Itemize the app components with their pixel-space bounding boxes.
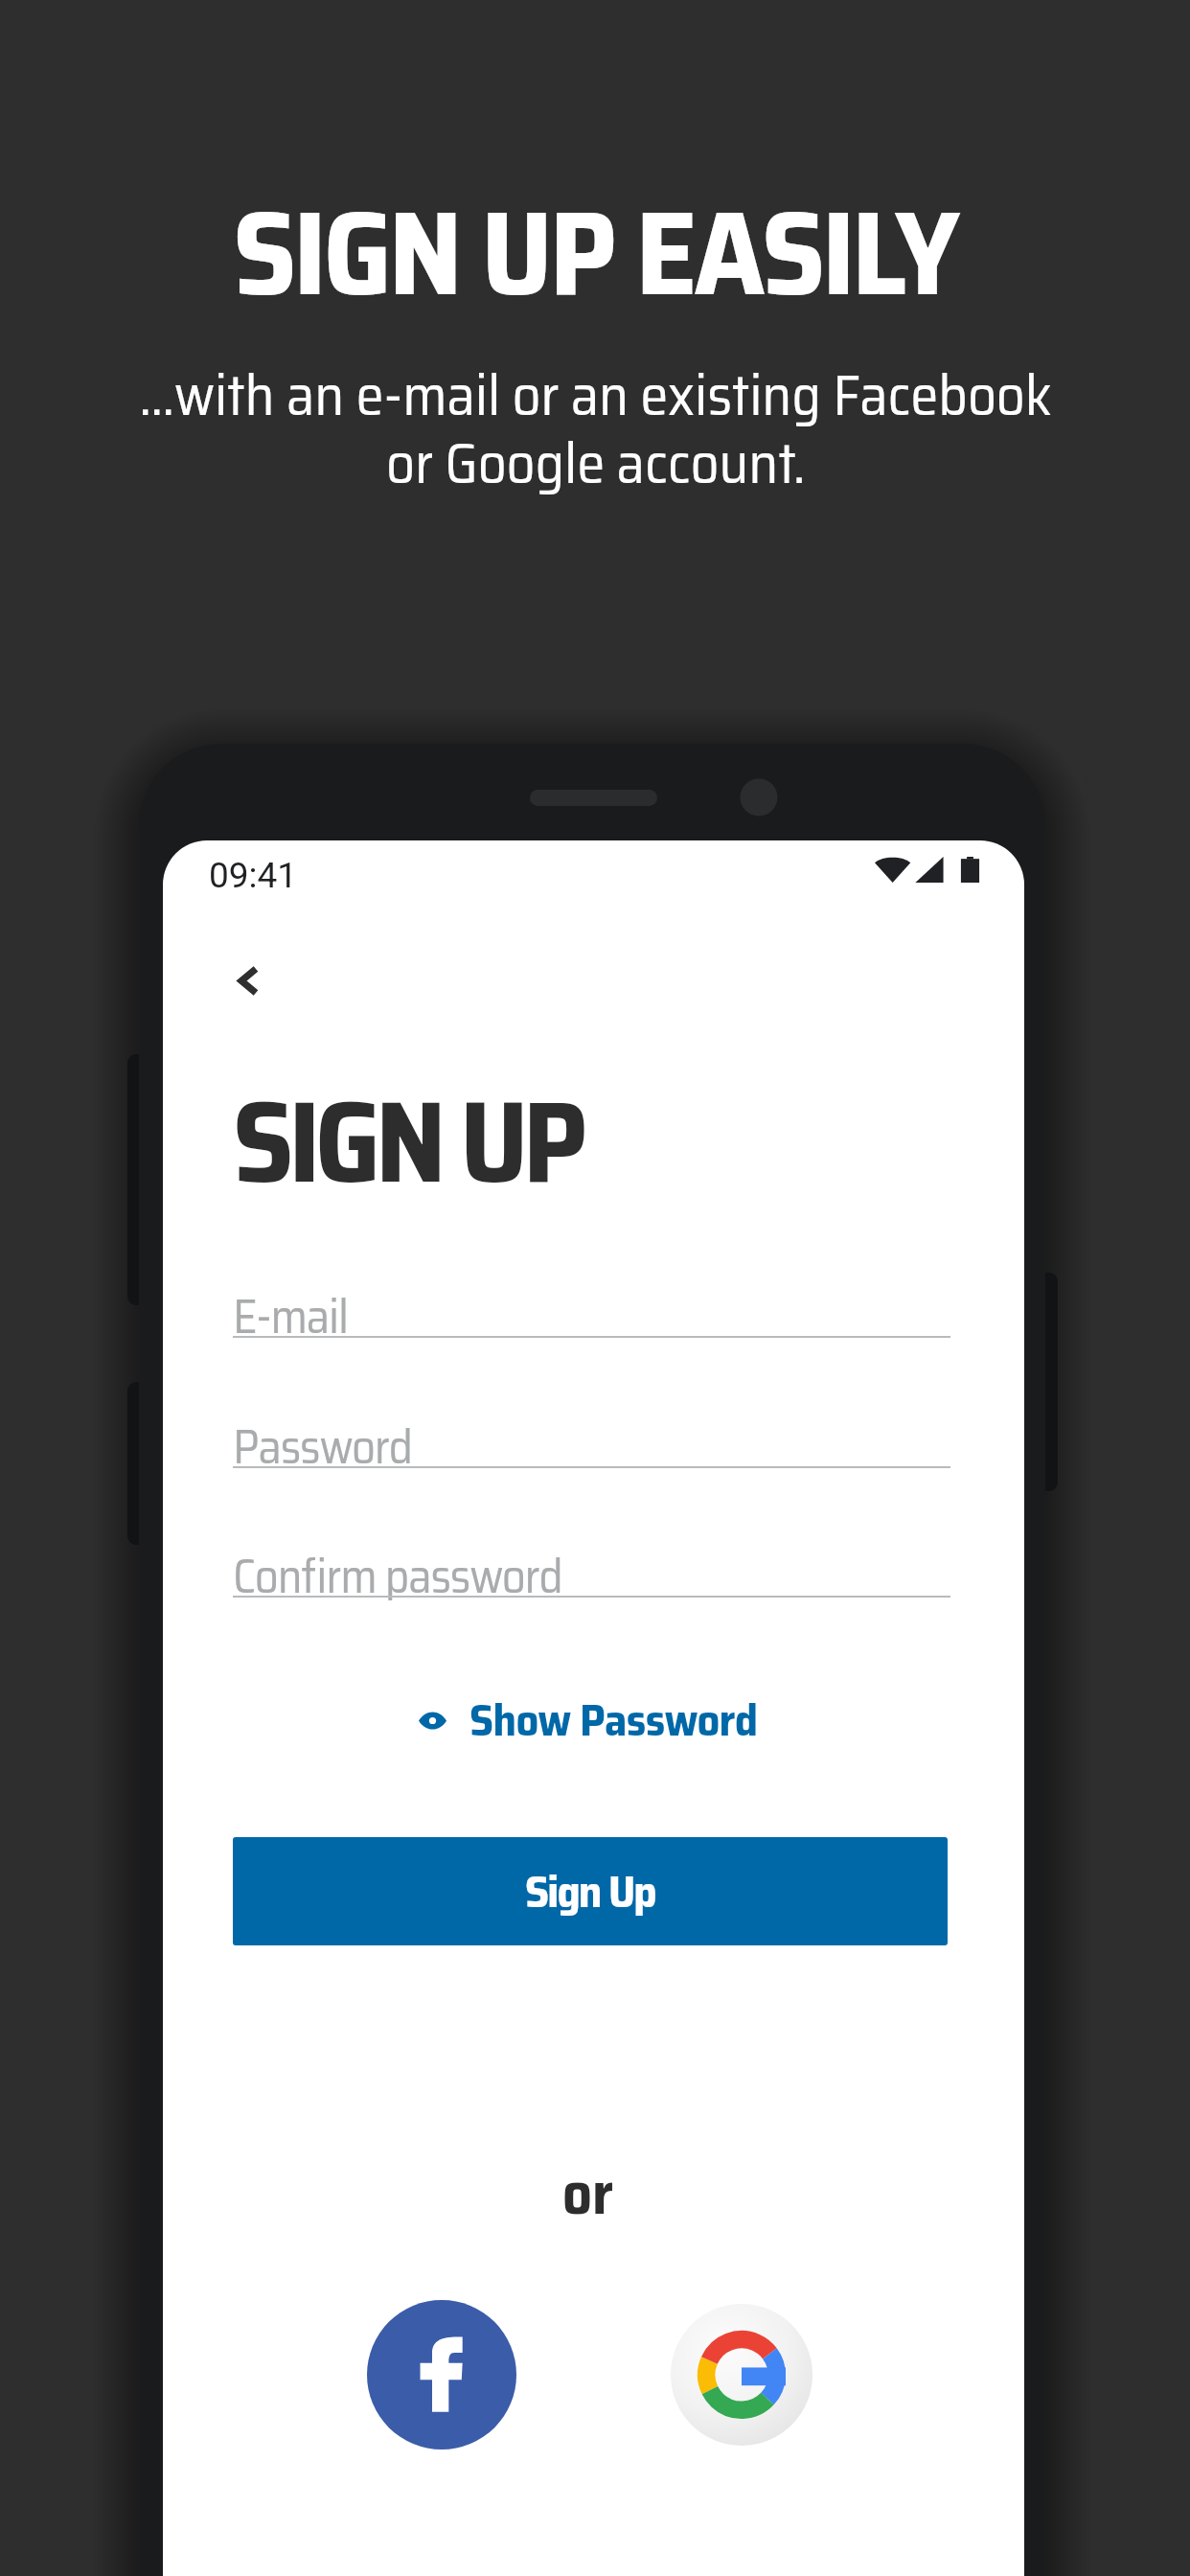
staticText: SIGN UP (233, 1052, 583, 1231)
staticText: 09:41 (209, 855, 298, 896)
button[interactable]: Confirm password (233, 1536, 950, 1598)
staticText: Show Password (469, 1685, 758, 1756)
button[interactable]: Password (233, 1407, 950, 1468)
staticText: ...with an e-mail or an existing Faceboo… (139, 351, 1052, 508)
staticText: or (163, 2148, 1018, 2240)
button[interactable]: E-mail (233, 1276, 950, 1338)
button[interactable]: Back (208, 940, 288, 1021)
button[interactable]: Sign up with Google (671, 2304, 812, 2446)
button[interactable]: Sign Up (233, 1837, 948, 1945)
button[interactable]: Sign up with Facebook (367, 2300, 516, 2449)
button[interactable]: Show Password (163, 1677, 1018, 1763)
staticText: Confirm password (233, 1539, 562, 1600)
staticText: Password (233, 1410, 412, 1471)
staticText: SIGN UP EASILY (233, 159, 957, 346)
staticText: Sign Up (525, 1856, 655, 1927)
staticText: E-mail (233, 1279, 348, 1341)
